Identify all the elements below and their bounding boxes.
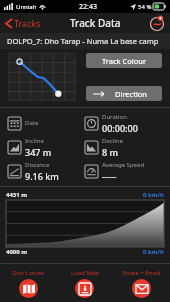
staticText: 00:00:00 [102, 122, 138, 134]
staticText: Tracks [14, 17, 41, 29]
button[interactable]: Date [8, 111, 85, 135]
button[interactable]: Track Colour [86, 53, 162, 68]
button[interactable]: Distance [8, 159, 85, 183]
staticText: 8 m [102, 146, 119, 158]
staticText: Load Map [71, 269, 99, 277]
staticText: 4090 m [6, 248, 28, 256]
button[interactable]: Tracks [4, 15, 43, 31]
button[interactable]: Don't show [0, 264, 56, 302]
button[interactable]: Direction [86, 86, 162, 101]
staticText: 22:43 [79, 2, 97, 12]
staticText: 54 % [138, 3, 152, 11]
staticText: DOLPO_7: Dho Tarap - Numa La base camp [7, 36, 159, 46]
staticText: Track Data [70, 16, 121, 30]
staticText: Direction [115, 89, 148, 99]
staticText: Don't show [12, 269, 44, 277]
button[interactable]: Decline [85, 135, 162, 159]
staticText: Track Colour [102, 56, 146, 66]
staticText: 0 km/h [143, 191, 164, 199]
staticText: Distance [25, 161, 50, 169]
staticText: Unniah [16, 3, 37, 11]
staticText: 347 m [25, 146, 52, 158]
button[interactable]: Incline [8, 135, 85, 159]
button[interactable]: Average Speed [85, 159, 162, 183]
button[interactable]: Elevation profile chart [6, 200, 164, 247]
button[interactable]: Share + Email [113, 264, 170, 302]
staticText: Average Speed [102, 161, 145, 169]
staticText: 4431 m [6, 191, 28, 199]
staticText: Duration [102, 113, 127, 121]
staticText: Share + Email [122, 269, 161, 277]
staticText: ----- [102, 170, 117, 182]
button[interactable]: Duration [85, 111, 162, 135]
staticText: Incline [25, 137, 44, 145]
button[interactable]: Map preview [8, 53, 76, 101]
button[interactable]: Load Map [56, 264, 113, 302]
staticText: 9.16 km [25, 170, 59, 182]
staticText: Decline [102, 137, 123, 145]
button[interactable]: Add track [148, 14, 166, 32]
staticText: 0 km/h [143, 248, 164, 256]
staticText: Date [25, 119, 39, 127]
